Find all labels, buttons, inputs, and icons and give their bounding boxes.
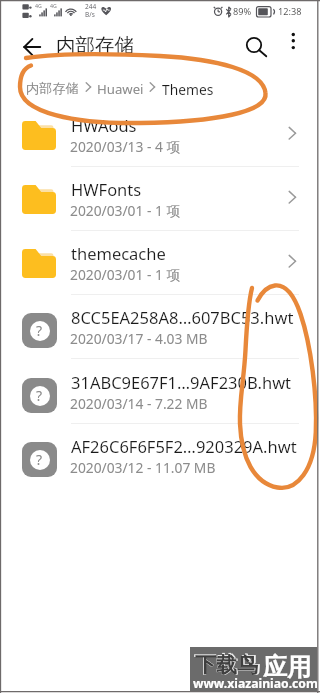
- staticText: 内部存储: [56, 33, 134, 58]
- staticText: 下载鸟: [194, 651, 260, 679]
- staticText: 2020/03/17 - 4.03 MB: [70, 329, 302, 348]
- button[interactable]: ?: [0, 295, 320, 359]
- staticText: 12:38: [278, 5, 302, 18]
- staticText: HWFonts: [71, 178, 303, 200]
- staticText: 31ABC9E67F1…9AF230B.hwt: [71, 371, 303, 393]
- staticText: 应用: [263, 652, 311, 682]
- button[interactable]: 内部存储: [26, 80, 79, 97]
- staticText: 2020/03/14 - 7.22 MB: [70, 394, 302, 413]
- button[interactable]: Huawei: [97, 80, 144, 98]
- button[interactable]: Back: [16, 31, 48, 63]
- staticText: www.xiazainiao.com: [193, 675, 318, 692]
- staticText: 4G: [35, 2, 42, 9]
- staticText: ?: [36, 321, 43, 340]
- staticText: 244 B/s: [85, 2, 97, 19]
- staticText: HWAods: [71, 114, 303, 136]
- button[interactable]: Themes: [162, 80, 214, 99]
- staticText: ?: [36, 450, 43, 469]
- staticText: AF26C6F6F5F2…920329A.hwt: [71, 435, 303, 457]
- staticText: themecache: [71, 242, 303, 264]
- button[interactable]: HWAods: [0, 103, 320, 167]
- staticText: 8CC5EA258A8…607BC53.hwt: [71, 306, 303, 328]
- staticText: 2020/03/01 - 1 项: [70, 201, 302, 220]
- staticText: 2020/03/12 - 11.07 MB: [70, 458, 302, 477]
- staticText: 2020/03/01 - 1 项: [70, 265, 302, 284]
- button[interactable]: ?: [0, 424, 320, 488]
- button[interactable]: HWFonts: [0, 167, 320, 231]
- staticText: ?: [36, 386, 43, 405]
- staticText: 下载鸟: [195, 652, 258, 678]
- button[interactable]: More options: [278, 29, 308, 59]
- button[interactable]: themecache: [0, 231, 320, 295]
- staticText: 4G: [50, 2, 57, 9]
- staticText: 89%: [233, 5, 252, 18]
- staticText: 2020/03/13 - 4 项: [70, 137, 302, 156]
- button[interactable]: ?: [0, 360, 320, 424]
- button[interactable]: Search: [238, 29, 270, 61]
